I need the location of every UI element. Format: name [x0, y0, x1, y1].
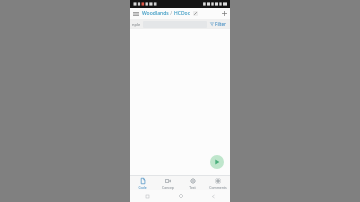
button[interactable]: Open navigation menu [130, 8, 142, 19]
button[interactable]: Comments [205, 176, 230, 190]
staticText: / [169, 10, 174, 17]
button[interactable]: Add [218, 8, 230, 19]
staticText: Woodlands [142, 10, 169, 17]
staticText: Code [138, 185, 147, 190]
staticText: Filter [215, 21, 227, 27]
button[interactable]: Edit [193, 11, 198, 16]
button[interactable]: Filter [209, 21, 228, 27]
button[interactable]: Start [210, 155, 224, 169]
staticText: HCDoc [174, 10, 191, 17]
staticText: Cancep [162, 185, 174, 190]
staticText: nple [132, 22, 141, 27]
button[interactable]: Cancep [155, 176, 180, 190]
staticText: Comments [209, 185, 227, 190]
button[interactable]: Code [130, 176, 155, 190]
button[interactable]: Recents [130, 190, 164, 202]
staticText: Test [189, 185, 196, 190]
button[interactable]: Test [180, 176, 205, 190]
button[interactable]: Home [164, 190, 197, 202]
